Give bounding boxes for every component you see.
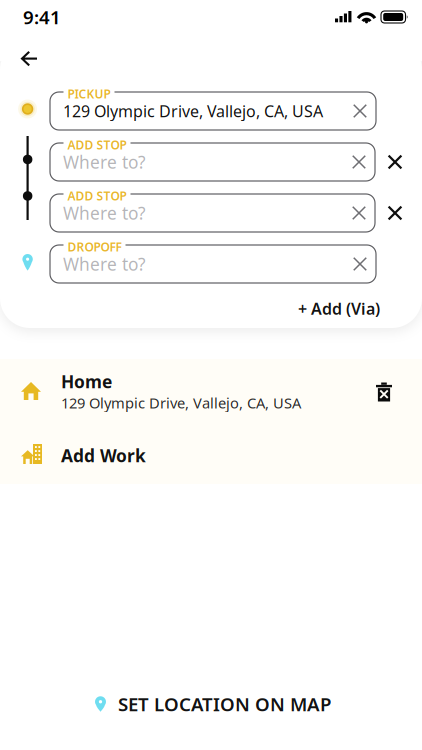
button[interactable]: Back [10, 40, 49, 77]
staticText: 129 Olympic Drive, Vallejo, CA, USA [63, 100, 323, 122]
button[interactable]: Clear DROPOFF [345, 245, 375, 283]
button[interactable]: Clear ADD STOP [344, 143, 374, 181]
staticText: 129 Olympic Drive, Vallejo, CA, USA [61, 393, 301, 412]
button[interactable]: Clear PICKUP [345, 92, 375, 130]
staticText: Where to? [63, 252, 146, 275]
button[interactable]: Home [0, 366, 422, 424]
staticText: PICKUP [67, 86, 110, 102]
button[interactable]: Remove Home [364, 372, 404, 412]
button[interactable]: Remove stop [376, 194, 414, 232]
button[interactable]: Clear ADD STOP [344, 194, 374, 232]
staticText: Where to? [63, 201, 146, 224]
staticText: 9:41 [23, 5, 61, 29]
staticText: DROPOFF [67, 239, 121, 255]
staticText: ADD STOP [67, 188, 126, 204]
staticText: ADD STOP [67, 137, 126, 153]
staticText: Add Work [61, 444, 146, 467]
staticText: SET LOCATION ON MAP [118, 692, 331, 716]
button[interactable]: + Add (Via) [288, 290, 390, 327]
button[interactable]: SET LOCATION ON MAP [2, 682, 422, 726]
button[interactable]: Remove stop [376, 143, 414, 181]
staticText: Where to? [63, 150, 146, 173]
staticText: Home [61, 370, 112, 393]
button[interactable]: Add Work [0, 432, 422, 482]
staticText: + Add (Via) [298, 298, 380, 319]
